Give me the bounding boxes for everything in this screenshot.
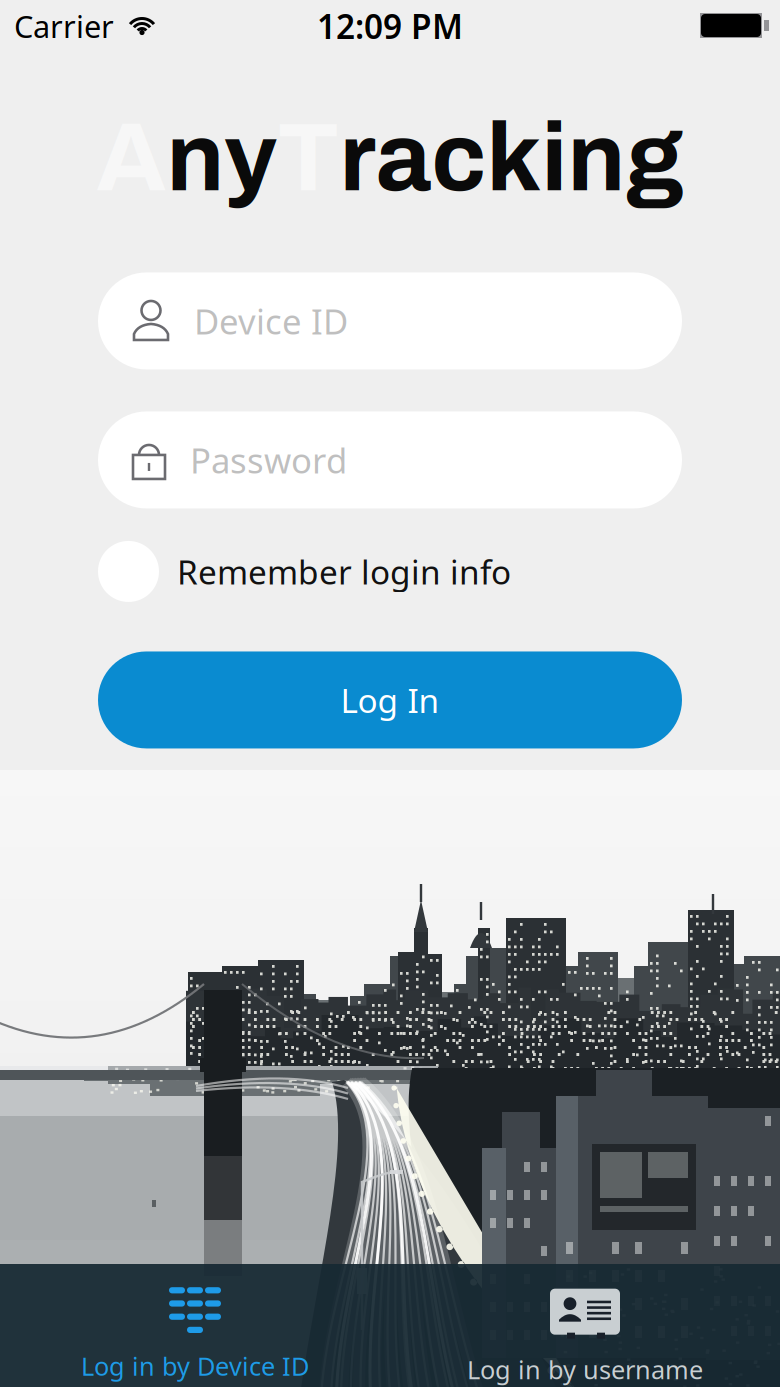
staticText: Log in by username: [467, 1353, 703, 1386]
button[interactable]: Log in by username: [390, 1257, 780, 1387]
staticText: T: [277, 106, 339, 210]
staticText: Device ID: [194, 298, 348, 344]
staticText: A: [96, 106, 166, 210]
staticText: Password: [190, 437, 347, 483]
staticText: Carrier: [14, 6, 114, 46]
staticText: Log In: [340, 678, 439, 722]
staticText: Remember login info: [177, 549, 511, 594]
button[interactable]: Password: [98, 411, 682, 508]
staticText: racking: [339, 106, 683, 210]
staticText: Log in by Device ID: [81, 1349, 309, 1383]
staticText: ny: [166, 106, 277, 210]
button[interactable]: Log In: [0, 651, 780, 748]
button[interactable]: Remember login info: [0, 530, 780, 612]
button[interactable]: Device ID: [98, 272, 682, 369]
staticText: 12:09 PM: [317, 4, 463, 48]
button[interactable]: Log in by Device ID: [0, 1260, 390, 1387]
